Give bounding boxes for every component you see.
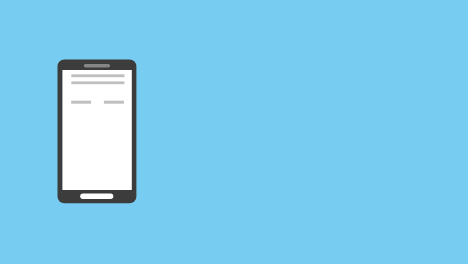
button[interactable]: Home button (80, 194, 113, 199)
button[interactable]: Phone display showing placeholder conten… (62, 70, 131, 190)
button[interactable]: Smartphone device (58, 60, 137, 204)
